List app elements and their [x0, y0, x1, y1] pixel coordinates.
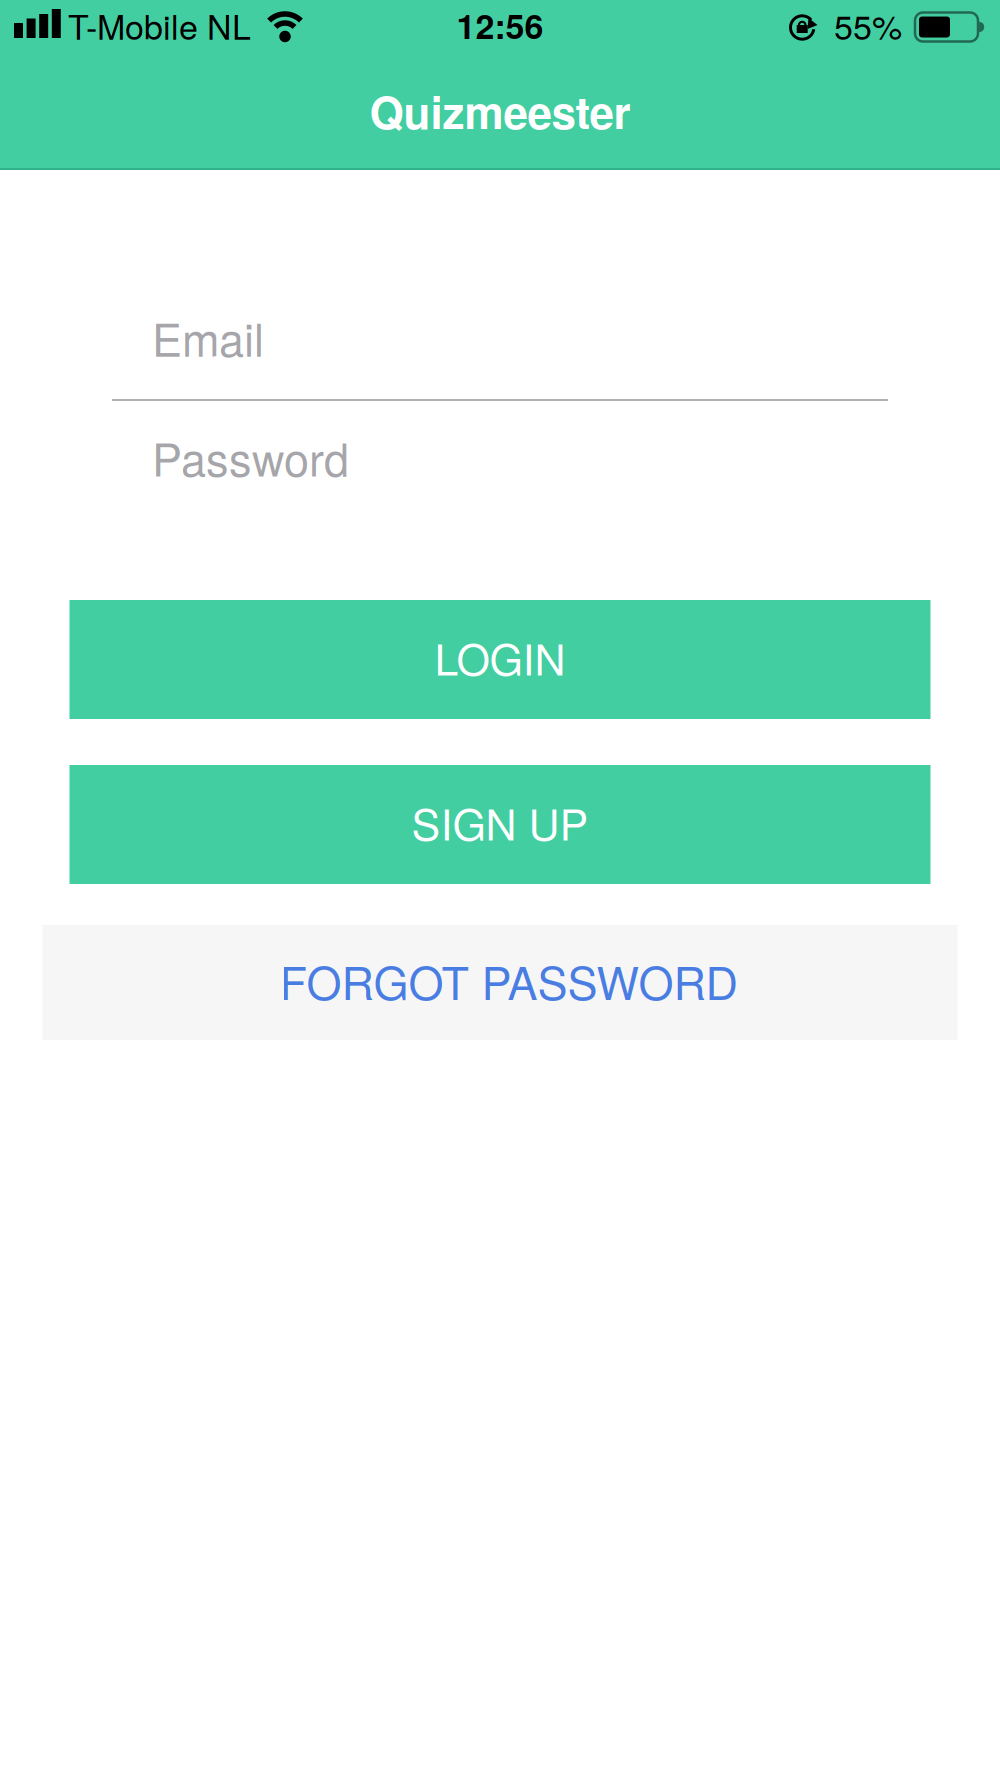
- button[interactable]: Password: [112, 430, 888, 484]
- staticText: LOGIN: [434, 626, 565, 688]
- button[interactable]: FORGOT PASSWORD: [42, 925, 957, 1040]
- staticText: T-Mobile NL: [68, 1, 251, 49]
- staticText: Password: [152, 425, 349, 489]
- staticText: Email: [152, 305, 264, 369]
- button[interactable]: LOGIN: [69, 600, 930, 719]
- staticText: 55%: [834, 1, 902, 49]
- button[interactable]: Email: [112, 305, 888, 401]
- staticText: FORGOT PASSWORD: [279, 948, 737, 1013]
- button[interactable]: SIGN UP: [69, 765, 930, 884]
- staticText: SIGN UP: [411, 791, 588, 853]
- staticText: 12:56: [456, 1, 543, 49]
- staticText: Quizmeester: [369, 79, 630, 142]
